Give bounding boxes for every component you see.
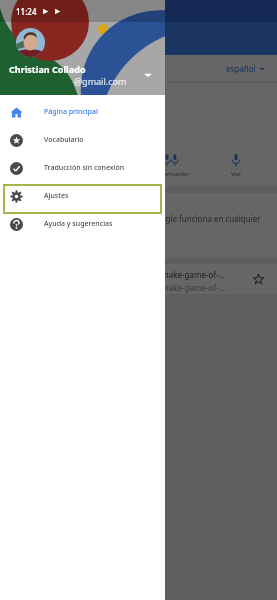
staticText: Christian Collado [9, 63, 86, 75]
staticText: español [226, 63, 256, 74]
staticText: Google funciona en cualquier [150, 213, 261, 224]
staticText: 11:24 [16, 6, 37, 17]
button[interactable]: Ayuda y sugerencias [0, 210, 165, 238]
staticText: Traducción sin conexión [44, 163, 125, 173]
staticText: @gmail.com [74, 75, 127, 87]
button[interactable]: snake-game-of-... [0, 264, 277, 294]
button[interactable]: Expandir cuentas [140, 67, 156, 83]
button[interactable]: Ajustes [0, 182, 165, 210]
button[interactable]: Vocabulario [0, 126, 165, 154]
button[interactable]: Cámara [9, 145, 73, 178]
staticText: Página principal [44, 107, 98, 117]
button[interactable]: Escribir [73, 145, 138, 178]
staticText: Vocabulario [44, 135, 84, 145]
button[interactable]: español [0, 55, 265, 82]
staticText: snake-game-of-... [160, 282, 226, 293]
button[interactable]: Conversación [138, 145, 203, 178]
staticText: Conversación [151, 170, 190, 178]
button[interactable]: Google funciona en cualquier [0, 193, 277, 258]
staticText: Voz [231, 170, 241, 178]
button[interactable]: Página principal [0, 98, 165, 126]
staticText: snake-game-of-... [160, 269, 226, 280]
staticText: Ajustes [44, 191, 69, 201]
button[interactable]: Guardar [249, 270, 267, 288]
staticText: Ayuda y sugerencias [44, 219, 113, 229]
button[interactable]: Cuenta [16, 28, 45, 57]
button[interactable]: Voz [203, 145, 268, 178]
button[interactable]: Traducción sin conexión [0, 154, 165, 182]
